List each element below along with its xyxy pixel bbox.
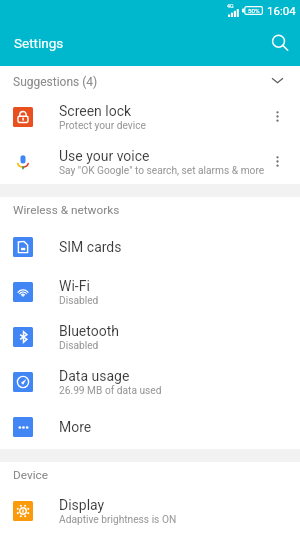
button[interactable]: Data usage [0, 359, 300, 404]
staticText: Settings [14, 35, 64, 51]
staticText: 50% [248, 7, 260, 14]
staticText: Protect your device [59, 120, 146, 132]
button[interactable]: Wi-Fi [0, 269, 300, 314]
staticText: Disabled [59, 340, 99, 352]
staticText: Data usage [59, 368, 130, 384]
staticText: More [59, 419, 92, 435]
button[interactable]: Display [0, 489, 300, 533]
button[interactable]: SIM cards [0, 224, 300, 269]
staticText: 26.99 MB of data used [59, 385, 162, 397]
staticText: Bluetooth [59, 323, 119, 339]
staticText: 4G [227, 3, 234, 9]
button[interactable]: Suggestions (4) [0, 66, 300, 94]
staticText: Wireless & networks [13, 203, 120, 217]
staticText: Device [13, 468, 48, 482]
staticText: Suggestions (4) [13, 75, 98, 89]
staticText: Say "OK Google" to search, set alarms & … [59, 165, 265, 177]
staticText: Wi-Fi [59, 278, 90, 294]
button[interactable]: Use your voice [0, 139, 300, 184]
staticText: Display [59, 497, 105, 513]
button[interactable]: Screen lock [0, 94, 300, 139]
button[interactable]: More options [254, 94, 300, 139]
button[interactable]: Bluetooth [0, 314, 300, 359]
button[interactable]: More options [254, 139, 300, 184]
staticText: SIM cards [59, 239, 122, 255]
staticText: 16:04 [267, 4, 296, 17]
button[interactable]: More [0, 404, 300, 449]
staticText: Screen lock [59, 103, 132, 119]
staticText: Use your voice [59, 148, 150, 164]
button[interactable]: Search [261, 24, 299, 62]
staticText: Disabled [59, 295, 99, 307]
staticText: Adaptive brightness is ON [59, 514, 177, 526]
